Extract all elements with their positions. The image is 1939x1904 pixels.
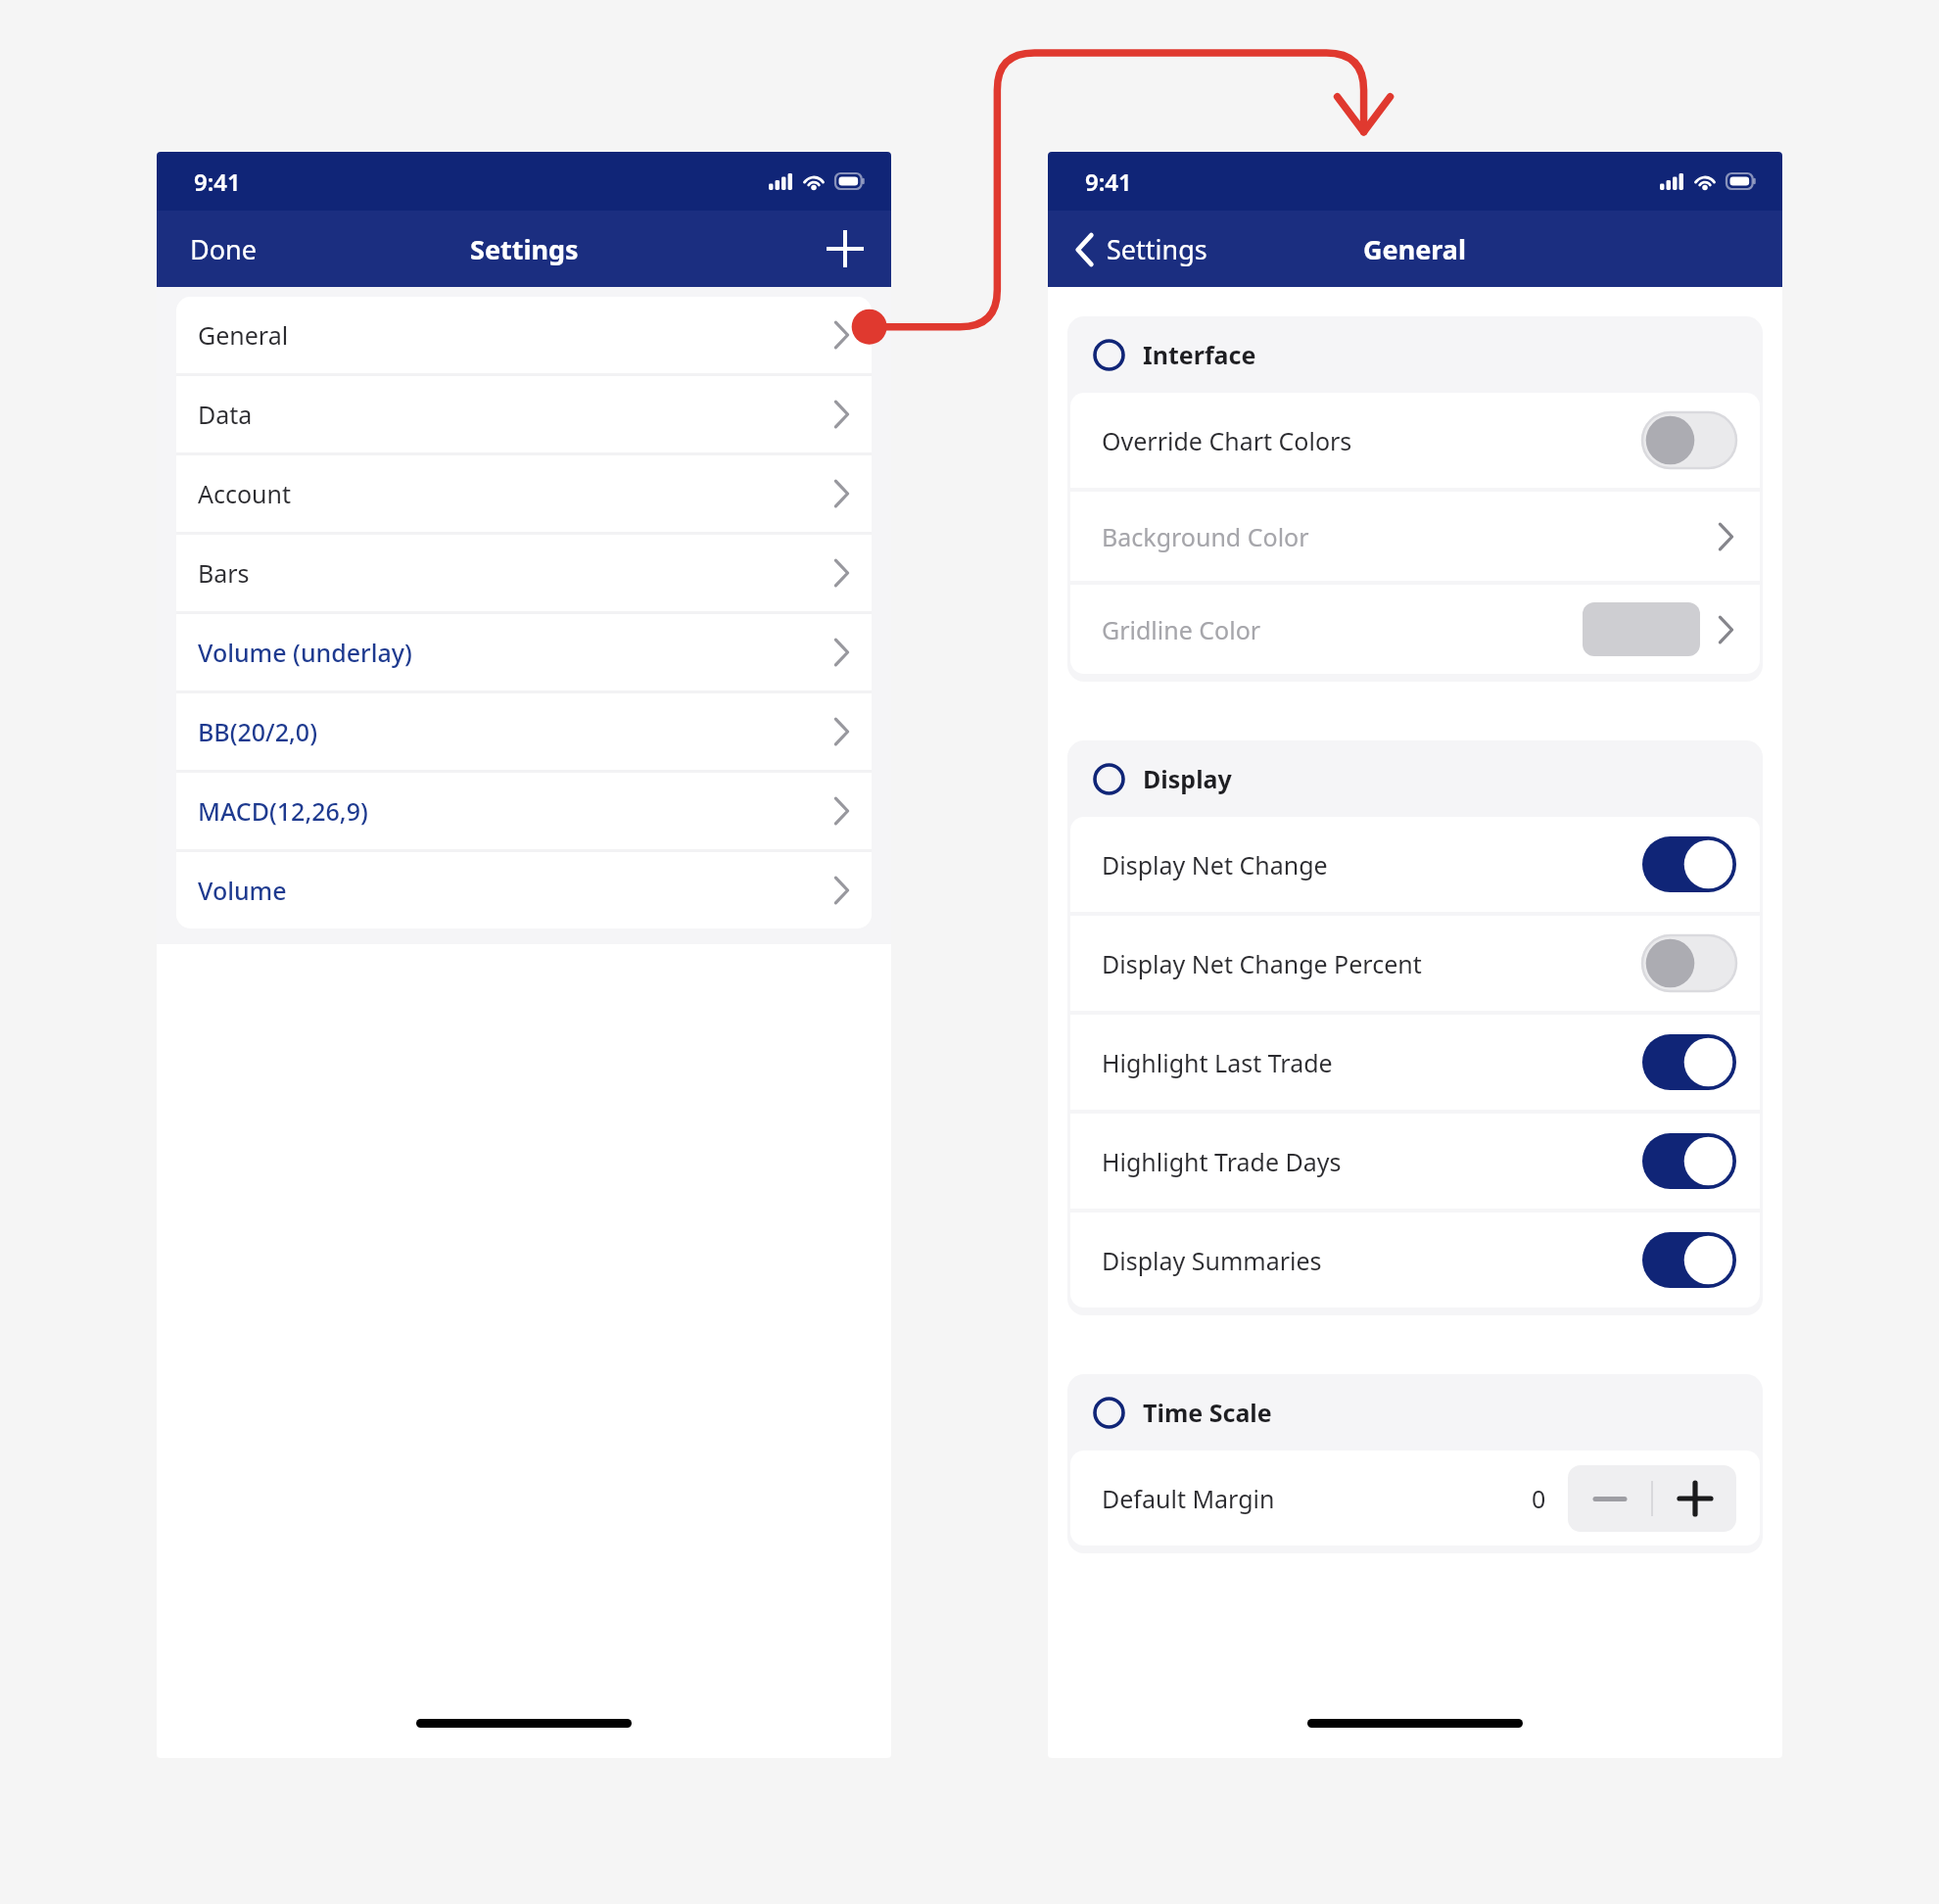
- button[interactable]: Add: [799, 220, 891, 277]
- staticText: 9:41: [1085, 166, 1132, 198]
- staticText: Account: [198, 477, 833, 510]
- button[interactable]: On: [1642, 1232, 1736, 1288]
- staticText: Highlight Trade Days: [1102, 1145, 1642, 1178]
- staticText: MACD(12,26,9): [198, 794, 833, 828]
- button[interactable]: On: [1642, 1034, 1736, 1090]
- button[interactable]: Volume: [176, 852, 872, 928]
- button[interactable]: Override Chart Colors: [1070, 393, 1760, 488]
- button[interactable]: Account: [176, 455, 872, 532]
- button[interactable]: Highlight Last Trade: [1070, 1015, 1760, 1110]
- staticText: General: [1363, 231, 1467, 267]
- button[interactable]: General: [176, 297, 872, 373]
- staticText: Volume (underlay): [198, 636, 833, 669]
- button[interactable]: Data: [176, 376, 872, 452]
- staticText: Override Chart Colors: [1102, 424, 1642, 457]
- button[interactable]: Display Net Change: [1070, 817, 1760, 912]
- button[interactable]: Settings: [1048, 221, 1223, 277]
- staticText: 9:41: [194, 166, 241, 198]
- button[interactable]: Off: [1642, 935, 1736, 991]
- staticText: Volume: [198, 874, 833, 907]
- button[interactable]: Increase: [1653, 1465, 1736, 1532]
- staticText: Bars: [198, 556, 833, 590]
- staticText: Gridline Color: [1102, 613, 1583, 646]
- button[interactable]: Volume (underlay): [176, 614, 872, 690]
- staticText: Settings: [470, 231, 579, 267]
- button[interactable]: Off: [1642, 412, 1736, 468]
- button[interactable]: On: [1642, 836, 1736, 892]
- staticText: General: [198, 318, 833, 352]
- staticText: Settings: [1107, 231, 1207, 267]
- staticText: Done: [190, 231, 257, 267]
- staticText: Display: [1143, 762, 1232, 795]
- staticText: Display Net Change: [1102, 848, 1642, 881]
- staticText: BB(20/2,0): [198, 715, 833, 748]
- staticText: Highlight Last Trade: [1102, 1046, 1642, 1079]
- button[interactable]: Bars: [176, 535, 872, 611]
- button[interactable]: MACD(12,26,9): [176, 773, 872, 849]
- staticText: Interface: [1143, 338, 1256, 371]
- button[interactable]: Decrease: [1568, 1465, 1651, 1532]
- staticText: Background Color: [1102, 520, 1718, 553]
- button[interactable]: Gridline Color: [1070, 585, 1760, 674]
- button[interactable]: Display Net Change Percent: [1070, 916, 1760, 1011]
- staticText: Data: [198, 398, 833, 431]
- button[interactable]: Highlight Trade Days: [1070, 1114, 1760, 1209]
- button[interactable]: On: [1642, 1133, 1736, 1189]
- button[interactable]: BB(20/2,0): [176, 693, 872, 770]
- staticText: 0: [1532, 1482, 1546, 1515]
- staticText: Display Summaries: [1102, 1244, 1642, 1277]
- button[interactable]: Done: [157, 221, 290, 277]
- button[interactable]: Display Summaries: [1070, 1213, 1760, 1308]
- staticText: Default Margin: [1102, 1482, 1532, 1515]
- button[interactable]: Background Color: [1070, 492, 1760, 581]
- staticText: Display Net Change Percent: [1102, 947, 1642, 980]
- staticText: Time Scale: [1143, 1396, 1272, 1429]
